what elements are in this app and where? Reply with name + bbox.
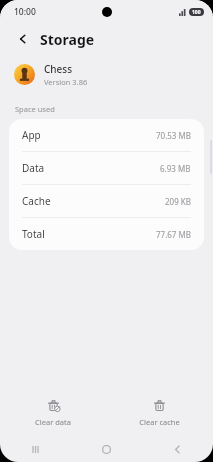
staticText: 6.93 MB [160,163,191,174]
button[interactable]: Back [12,28,34,50]
staticText: Clear cache [139,417,180,427]
staticText: 209 KB [165,196,191,207]
staticText: Storage [40,30,95,49]
button[interactable]: Data [9,152,204,185]
button[interactable]: Home [71,436,142,462]
staticText: 77.67 MB [156,229,191,240]
staticText: Chess [44,62,73,76]
staticText: Data [22,161,45,175]
staticText: 100 [192,9,201,16]
button[interactable]: Total [9,218,204,250]
staticText: 10:00 [14,6,36,18]
staticText: 70.53 MB [156,130,191,141]
staticText: Total [22,227,45,241]
staticText: App [22,128,41,142]
button[interactable]: Chess [0,54,213,94]
button[interactable]: Cache [9,185,204,218]
button[interactable]: Clear data [0,395,106,431]
staticText: Version 3.86 [44,77,88,87]
button[interactable]: Recent apps [0,436,71,462]
staticText: Cache [22,194,51,208]
staticText: Clear data [35,417,71,427]
staticText: Space used [15,104,55,114]
button[interactable]: App [9,119,204,152]
button[interactable]: Back [142,436,213,462]
button[interactable]: Clear cache [106,395,213,431]
